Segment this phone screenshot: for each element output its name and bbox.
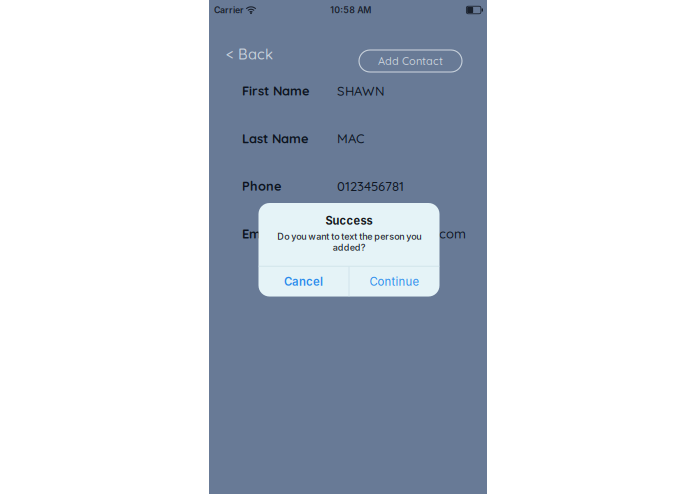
button[interactable]: < Back	[226, 42, 284, 66]
staticText: Continue	[369, 275, 419, 288]
staticText: Success	[325, 214, 372, 227]
staticText: shawnm@gmail.com	[337, 225, 466, 242]
staticText: < Back	[226, 45, 273, 63]
button[interactable]: Add Contact	[359, 43, 462, 65]
staticText: 0123456781	[337, 178, 404, 194]
staticText: Do you want to text the person you added…	[277, 231, 421, 253]
staticText: SHAWN	[337, 83, 385, 99]
button[interactable]: Cancel	[258, 266, 349, 296]
staticText: 10:58 AM	[330, 5, 371, 15]
staticText: Phone	[242, 178, 282, 194]
button[interactable]: Continue	[349, 266, 440, 296]
staticText: First Name	[242, 83, 310, 99]
staticText: MAC	[337, 130, 364, 146]
staticText: Last Name	[242, 130, 309, 146]
staticText: Cancel	[284, 275, 323, 288]
staticText: Add Contact	[378, 54, 443, 68]
staticText: Carrier	[214, 5, 243, 15]
staticText: Email	[242, 226, 275, 242]
